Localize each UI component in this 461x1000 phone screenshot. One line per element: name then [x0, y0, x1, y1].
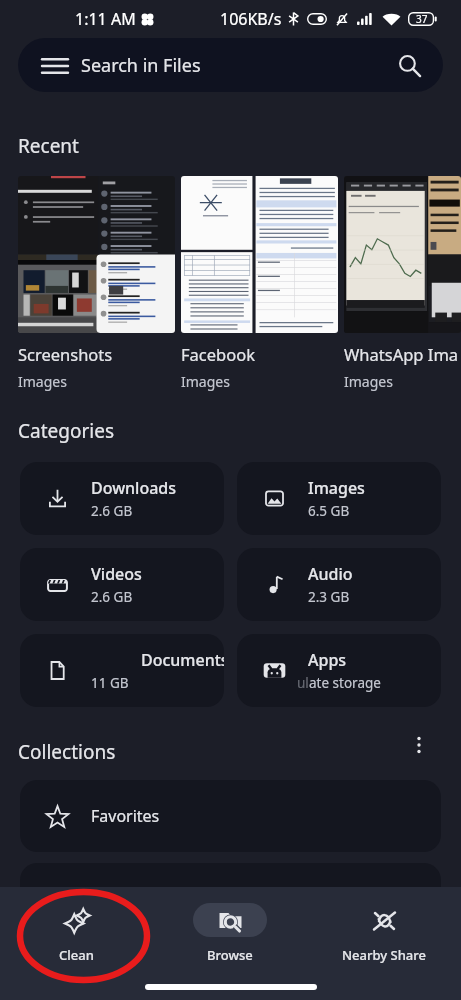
button[interactable]: Facebook	[181, 176, 338, 391]
button[interactable]: More options	[402, 735, 436, 769]
staticText: Recent	[18, 133, 79, 159]
other: Open navigation menu	[42, 58, 68, 74]
staticText: Browse	[207, 946, 253, 964]
staticText: Images	[181, 372, 230, 391]
staticText: 2.6 GB	[91, 588, 133, 606]
staticText: 11 GB	[91, 674, 129, 692]
button[interactable]: Open navigation menu	[18, 38, 443, 92]
staticText: Apps	[308, 649, 347, 671]
staticText: 2.6 GB	[91, 502, 133, 520]
staticText: Categories	[18, 418, 114, 444]
button[interactable]: Apps	[237, 634, 441, 707]
staticText: Clean	[59, 946, 94, 964]
staticText: 1:11 AM	[75, 8, 136, 30]
staticText: ate storage	[309, 674, 381, 692]
button[interactable]: Clean	[0, 903, 153, 964]
staticText: Images	[18, 372, 67, 391]
staticText: Images	[344, 372, 393, 391]
staticText: Search in Files	[81, 53, 201, 78]
staticText: Images	[308, 477, 365, 499]
staticText: 37	[416, 12, 428, 26]
staticText: ul	[297, 674, 309, 692]
button[interactable]: Videos	[20, 548, 224, 621]
button[interactable]: Nearby Share	[307, 903, 461, 964]
other: Search	[398, 54, 421, 77]
button[interactable]: Audio	[237, 548, 441, 621]
button[interactable]: Downloads	[20, 462, 224, 535]
staticText: Collections	[18, 739, 116, 765]
staticText: Audio	[308, 563, 353, 585]
button[interactable]: Documents	[20, 634, 224, 707]
staticText: 6.5 GB	[308, 502, 350, 520]
staticText: Screenshots	[18, 343, 113, 365]
staticText: Facebook	[181, 343, 255, 365]
button[interactable]: Browse	[153, 903, 307, 964]
staticText: Documents	[141, 649, 224, 671]
staticText: 106KB/s	[220, 8, 282, 30]
staticText: Downloads	[91, 477, 177, 499]
staticText: Videos	[91, 563, 142, 585]
staticText: WhatsApp Ima	[344, 343, 459, 365]
staticText: Favorites	[91, 805, 160, 827]
staticText: 2.3 GB	[308, 588, 350, 606]
staticText: Nearby Share	[342, 946, 426, 964]
button[interactable]	[20, 863, 441, 935]
button[interactable]: WhatsApp Ima	[344, 176, 461, 391]
button[interactable]: Images	[237, 462, 441, 535]
button[interactable]: Favorites	[20, 780, 441, 852]
button[interactable]: Screenshots	[18, 176, 175, 391]
